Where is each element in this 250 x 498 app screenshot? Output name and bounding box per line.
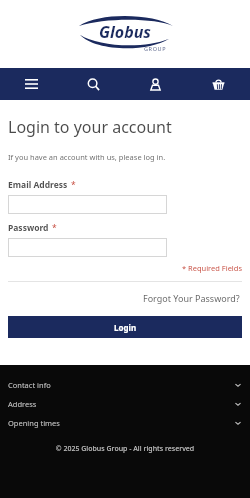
staticText: Contact info xyxy=(8,380,234,390)
button[interactable]: Account xyxy=(124,68,187,100)
button[interactable]: Search xyxy=(62,68,124,100)
staticText: * xyxy=(52,222,57,234)
staticText: Login to your account xyxy=(8,116,172,138)
staticText: GROUP xyxy=(144,45,167,52)
staticText: * Required Fields xyxy=(8,263,242,273)
staticText: Globus xyxy=(99,21,151,43)
staticText: © 2025 Globus Group - All rights reserve… xyxy=(0,444,250,454)
button[interactable]: Contact info xyxy=(0,375,250,394)
button[interactable]: Forgot Your Password? xyxy=(141,290,242,306)
staticText: Address xyxy=(8,399,234,409)
staticText: If you have an account with us, please l… xyxy=(8,152,166,162)
button[interactable]: Basket xyxy=(187,68,250,100)
button[interactable]: Address xyxy=(0,394,250,413)
staticText: Opening times xyxy=(8,418,234,428)
button[interactable] xyxy=(8,195,167,214)
button[interactable]: Login xyxy=(8,316,242,338)
staticText: * xyxy=(71,179,76,191)
button[interactable]: Opening times xyxy=(0,413,250,432)
staticText: Password xyxy=(8,222,49,234)
staticText: Login xyxy=(114,322,137,333)
staticText: Email Address xyxy=(8,179,68,191)
button[interactable] xyxy=(8,238,167,257)
button[interactable]: Menu xyxy=(0,68,62,100)
